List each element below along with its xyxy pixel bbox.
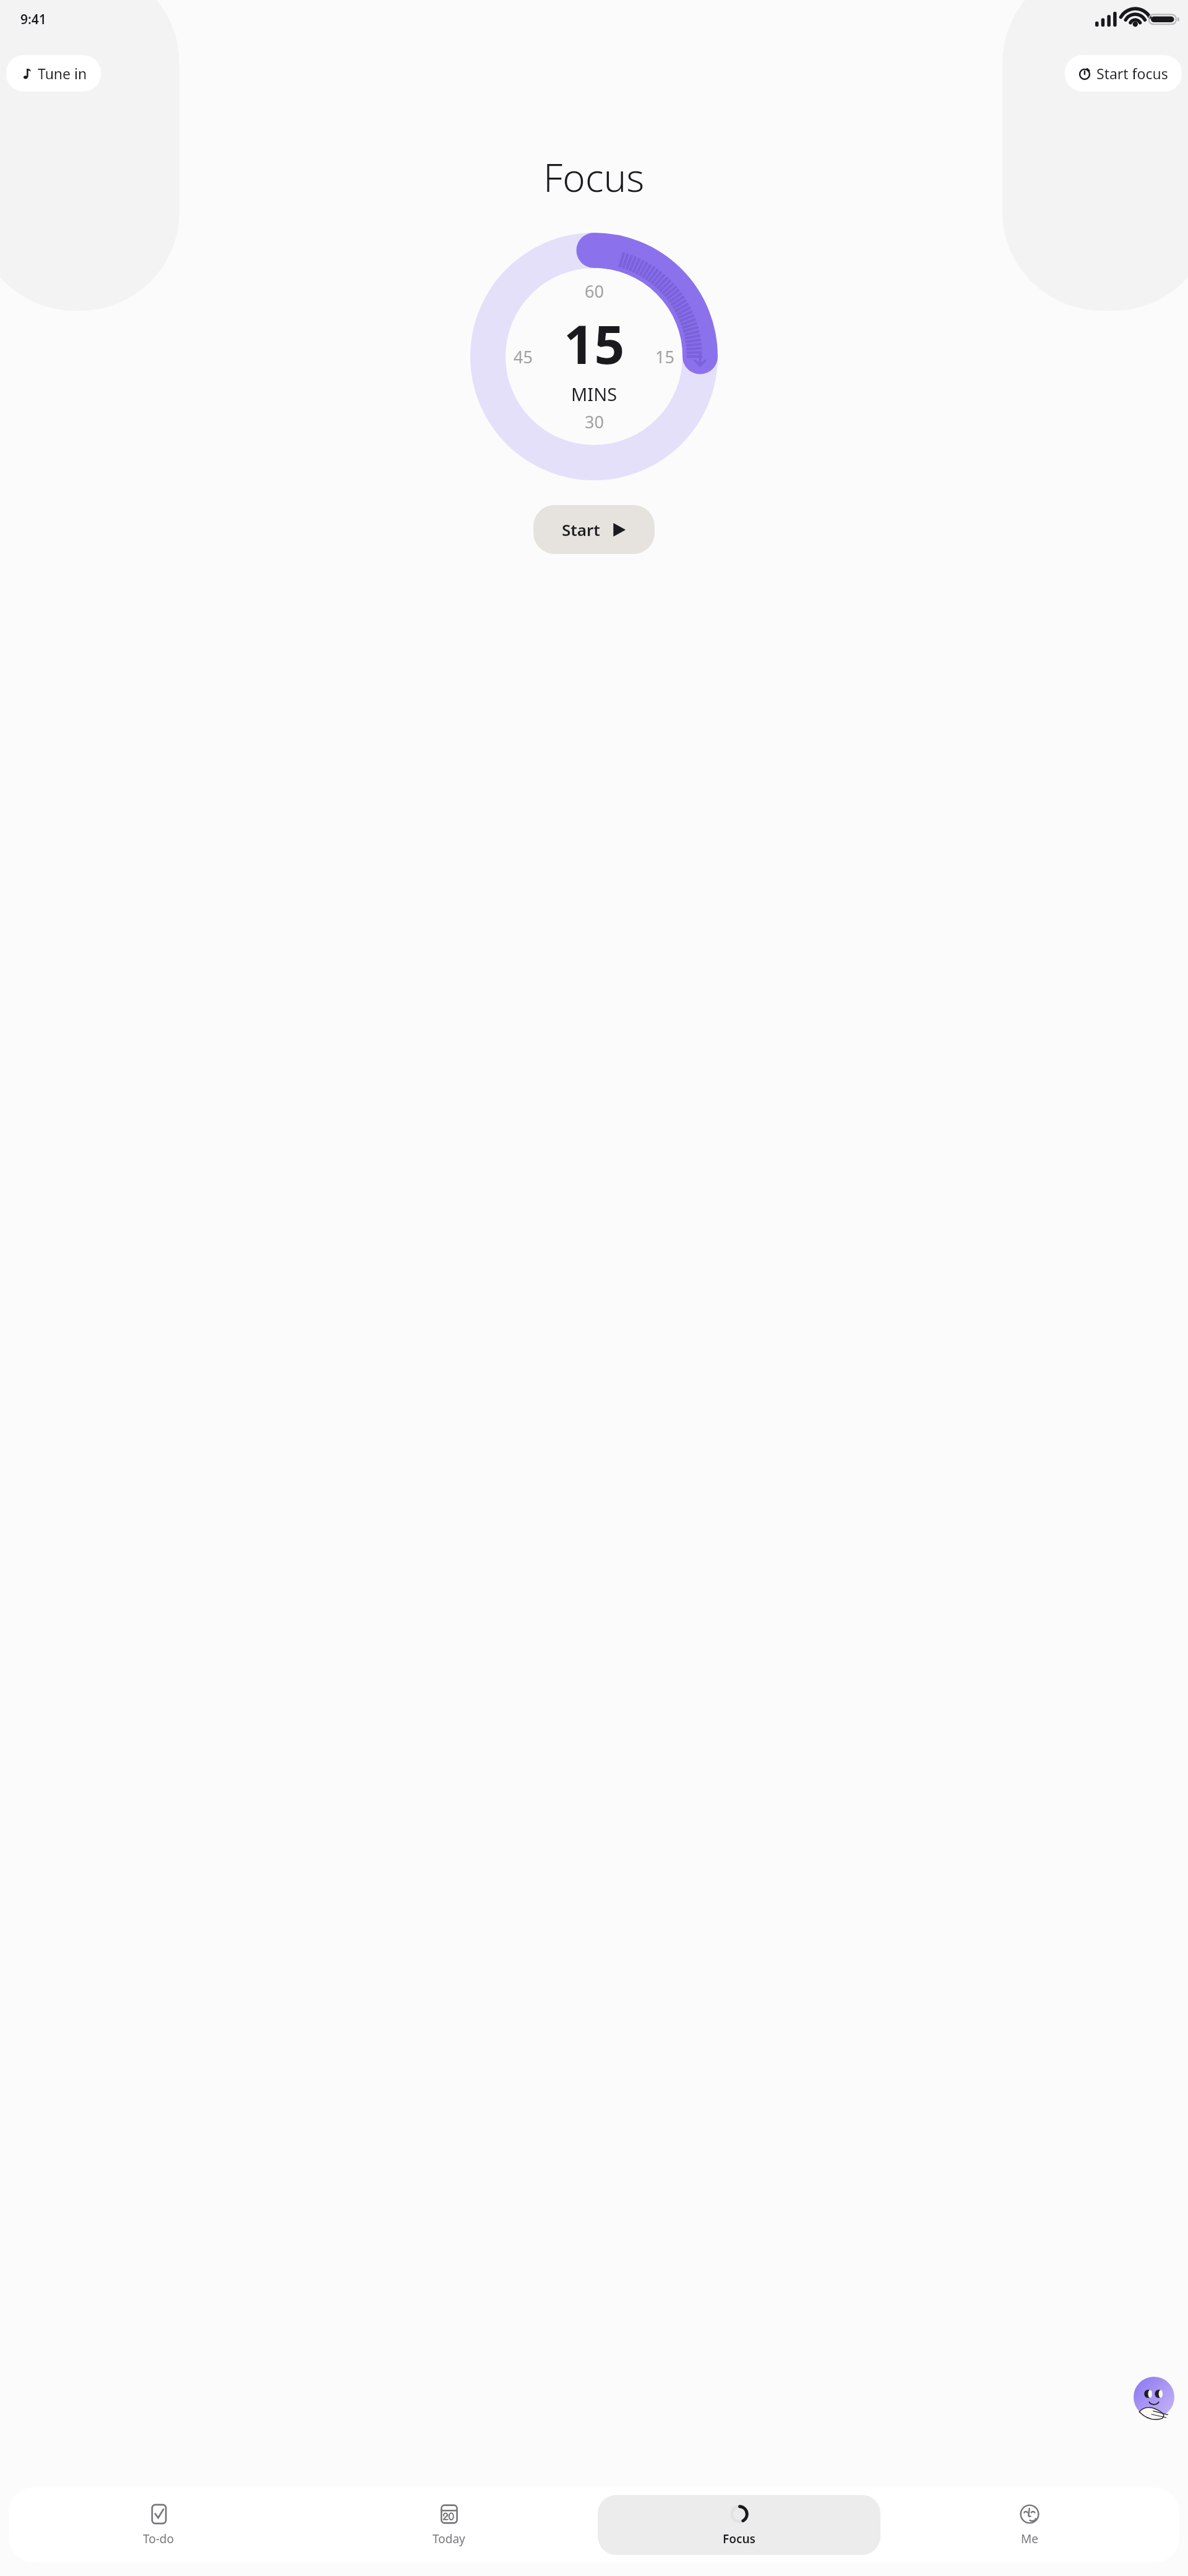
button[interactable]: Start focus <box>1065 55 1182 92</box>
button[interactable]: To-do <box>17 2495 300 2555</box>
staticText: MINS <box>571 382 618 406</box>
staticText: 45 <box>514 345 533 368</box>
staticText: Tune in <box>38 64 87 83</box>
staticText: To-do <box>143 2531 174 2547</box>
staticText: 60 <box>585 280 604 303</box>
other: To-do <box>148 2503 170 2525</box>
other: Focus <box>728 2503 751 2525</box>
staticText: 15 <box>564 307 625 379</box>
staticText: Start focus <box>1096 64 1168 83</box>
staticText: Start <box>562 519 600 540</box>
staticText: 15 <box>655 345 674 368</box>
staticText: Today <box>433 2531 465 2547</box>
staticText: Focus <box>723 2531 755 2547</box>
staticText: 9:41 <box>20 11 46 28</box>
button[interactable]: Today <box>308 2495 590 2555</box>
button[interactable]: Start <box>533 505 655 554</box>
staticText: Focus <box>543 151 645 203</box>
button[interactable]: Me <box>888 2495 1171 2555</box>
staticText: 30 <box>585 410 604 433</box>
other: Today <box>438 2503 460 2525</box>
button[interactable]: Tune in <box>6 55 101 92</box>
staticText: Me <box>1021 2531 1038 2547</box>
other: Me <box>1018 2503 1041 2525</box>
button[interactable]: Focus <box>598 2495 880 2555</box>
